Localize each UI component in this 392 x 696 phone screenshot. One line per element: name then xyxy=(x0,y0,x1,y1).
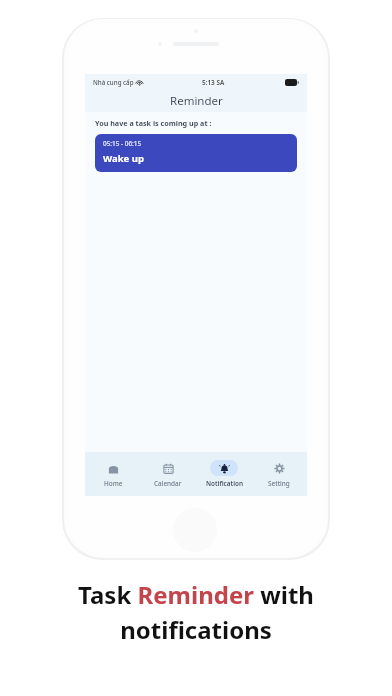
button[interactable]: 05:15 - 06:15 xyxy=(95,134,297,172)
button[interactable]: Home xyxy=(86,460,140,488)
staticText: Home xyxy=(104,479,123,488)
staticText: Wake up xyxy=(103,152,144,165)
staticText: 05:15 - 06:15 xyxy=(103,139,142,148)
staticText: Setting xyxy=(268,479,290,488)
button[interactable]: Notification xyxy=(197,460,251,488)
staticText: Nhà cung cấp xyxy=(93,78,134,86)
staticText: You have a task is coming up at : xyxy=(95,118,212,128)
staticText: Calendar xyxy=(154,479,182,488)
button[interactable]: Setting xyxy=(252,460,306,488)
staticText: 5:13 SA xyxy=(202,78,225,87)
staticText: Reminder xyxy=(170,93,223,109)
button[interactable]: Calendar xyxy=(141,460,195,488)
staticText: notifications xyxy=(120,613,272,646)
staticText: Notification xyxy=(206,479,243,488)
staticText: Task Reminder with xyxy=(78,578,314,611)
